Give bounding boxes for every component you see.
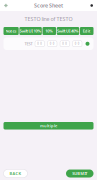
staticText: Notes <box>6 28 17 34</box>
staticText: 0 0 <box>37 42 42 45</box>
staticText: Edit <box>83 28 91 34</box>
staticText: TESTO line of TESTO <box>24 15 72 23</box>
staticText: SwiftUI 10% <box>20 28 42 34</box>
staticText: Score Sheet <box>34 2 63 9</box>
button[interactable]: BACK <box>3 169 27 177</box>
staticText: SUBMIT <box>72 171 87 176</box>
button[interactable]: More <box>84 0 97 11</box>
button[interactable]: Notes <box>3 27 19 35</box>
button[interactable]: Add <box>0 0 14 11</box>
button[interactable]: 10% <box>42 27 56 35</box>
staticText: 10% <box>45 28 53 34</box>
button[interactable]: 0 0 <box>60 41 69 47</box>
staticText: 0 0 <box>62 42 67 45</box>
button[interactable]: 0 0 <box>72 41 82 47</box>
staticText: BACK <box>9 171 21 176</box>
staticText: SwiftUI 40% <box>57 28 79 34</box>
button[interactable]: 0 0 <box>47 41 57 47</box>
staticText: TEST <box>24 41 32 46</box>
button[interactable]: 0 0 <box>35 41 44 47</box>
staticText: 0 0 <box>75 42 80 45</box>
button[interactable]: SUBMIT <box>66 169 93 177</box>
button[interactable]: SwiftUI 10% <box>19 27 42 35</box>
staticText: 0 0 <box>50 42 55 45</box>
button[interactable]: multiple <box>3 122 93 129</box>
button[interactable]: SwiftUI 40% <box>57 27 79 35</box>
button[interactable]: Edit <box>80 27 93 35</box>
staticText: multiple <box>40 123 57 128</box>
